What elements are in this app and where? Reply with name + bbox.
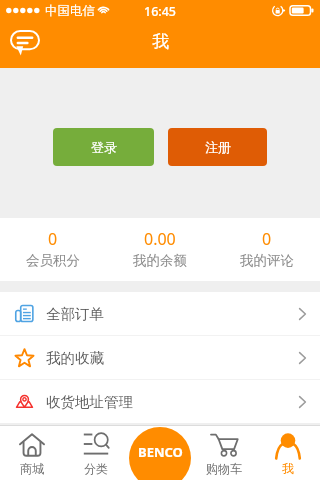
button[interactable]: 全部订单 [0, 292, 320, 335]
staticText: 16:45 [144, 3, 177, 20]
staticText: 登录 [91, 139, 117, 155]
staticText: 购物车 [206, 461, 242, 476]
staticText: 中国电信 [45, 3, 95, 19]
staticText: BENCO [138, 443, 183, 461]
button[interactable]: 分类 [64, 426, 128, 480]
button[interactable]: 商城 [0, 426, 64, 480]
button[interactable]: 登录 [53, 128, 154, 166]
staticText: 0 [262, 228, 272, 250]
staticText: 全部订单 [46, 305, 104, 323]
staticText: 商城 [20, 461, 44, 476]
staticText: 分类 [84, 461, 108, 476]
staticText: 我 [152, 31, 169, 52]
button[interactable]: 我 [256, 426, 320, 480]
staticText: 我的评论 [240, 252, 294, 269]
staticText: 0 [48, 228, 58, 250]
staticText: 我的收藏 [46, 349, 104, 367]
staticText: 会员积分 [26, 252, 80, 269]
button[interactable]: Messages [8, 26, 42, 60]
button[interactable]: 注册 [168, 128, 267, 166]
staticText: 0.00 [144, 228, 176, 250]
button[interactable]: 购物车 [192, 426, 256, 480]
staticText: 收货地址管理 [46, 393, 133, 411]
staticText: 我的余额 [133, 252, 187, 269]
button[interactable]: 收货地址管理 [0, 380, 320, 423]
staticText: 注册 [205, 139, 231, 155]
button[interactable]: 我的收藏 [0, 336, 320, 379]
button[interactable]: BENCO [129, 427, 191, 480]
staticText: 我 [282, 461, 294, 476]
